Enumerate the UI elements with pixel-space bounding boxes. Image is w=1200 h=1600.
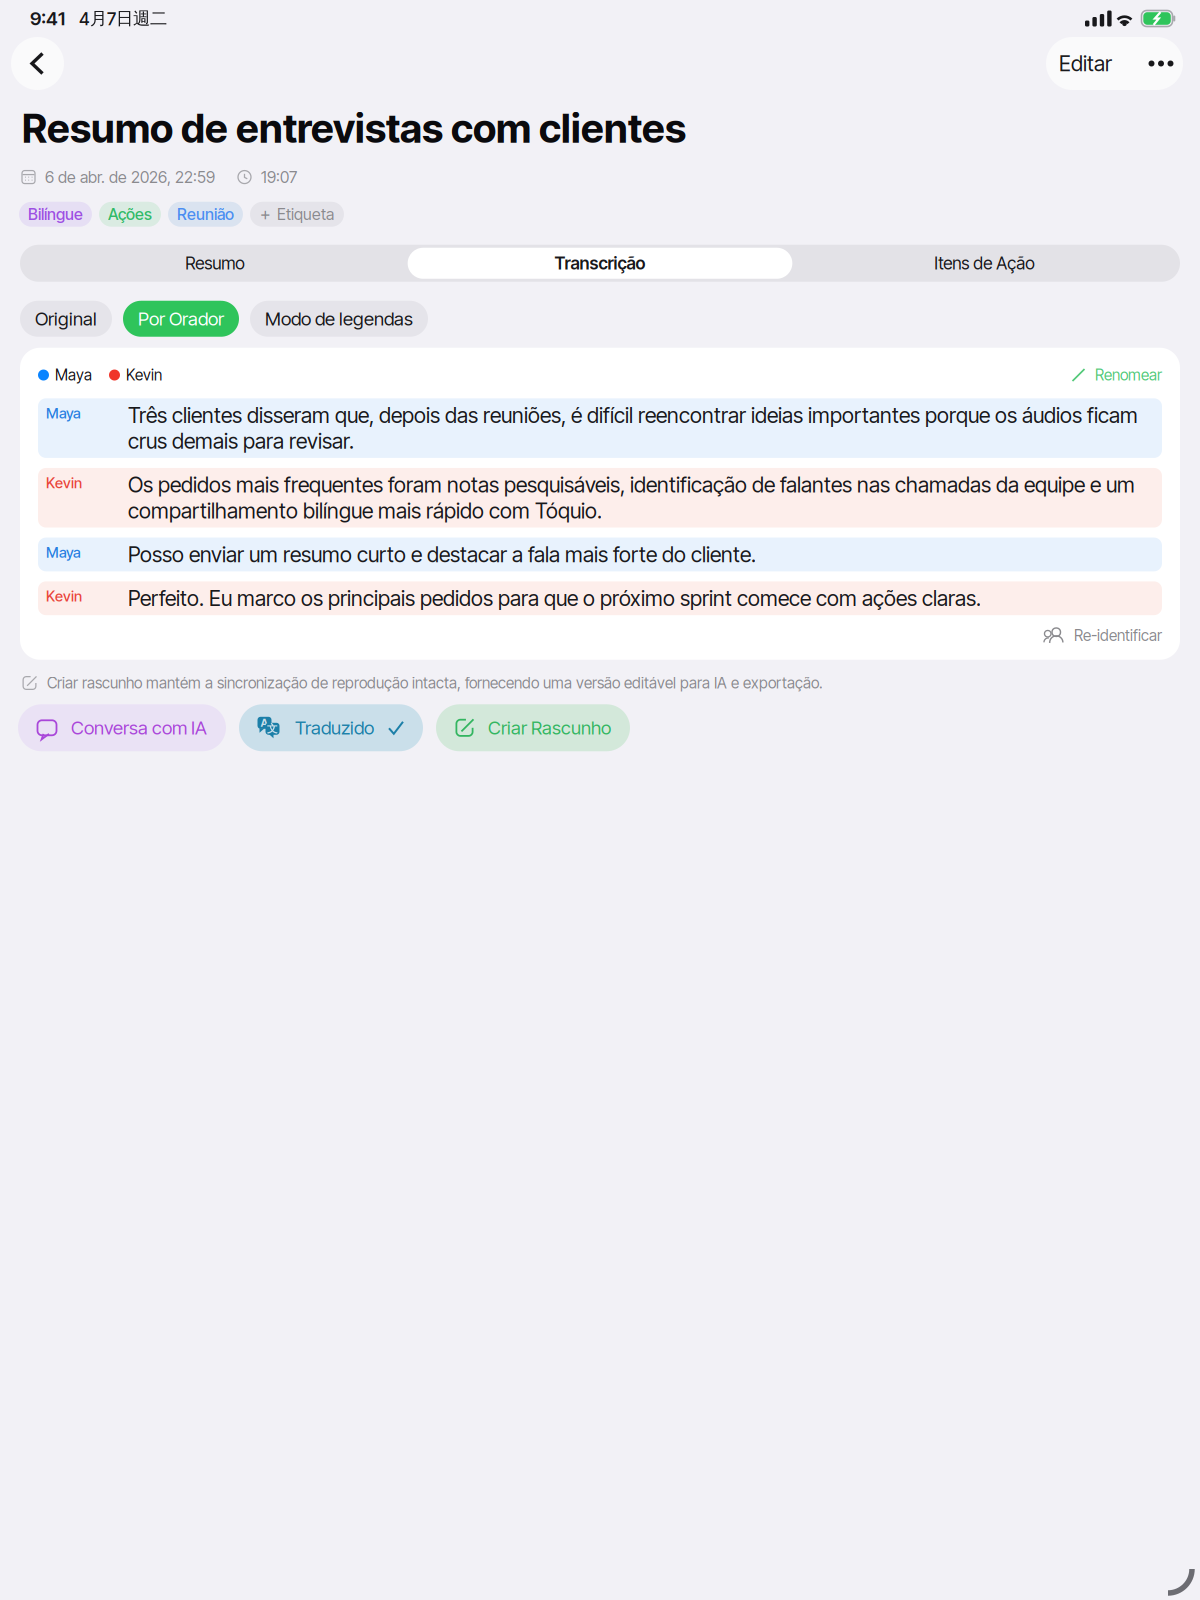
staticText: Por Orador xyxy=(138,307,224,330)
staticText: Traduzido xyxy=(295,716,374,739)
staticText: Criar Rascunho xyxy=(488,716,611,739)
staticText: Renomear xyxy=(1095,366,1162,384)
staticText: A xyxy=(260,716,268,729)
staticText: Três clientes disseram que, depois das r… xyxy=(128,402,1138,454)
staticText: + xyxy=(260,204,271,225)
staticText: Kevin xyxy=(126,366,162,384)
button[interactable]: Conversa com IA xyxy=(18,704,226,751)
button[interactable]: Criar Rascunho xyxy=(436,704,630,751)
button[interactable]: Original xyxy=(20,301,112,337)
button[interactable]: Editar xyxy=(1046,37,1130,90)
button[interactable]: Bilíngue xyxy=(19,202,92,227)
staticText: Ações xyxy=(108,205,152,224)
staticText: 6 de abr. de 2026, 22:59 xyxy=(45,167,215,187)
staticText: Maya xyxy=(46,544,81,561)
staticText: Perfeito. Eu marco os principais pedidos… xyxy=(128,585,981,611)
staticText: Bilíngue xyxy=(28,205,83,224)
staticText: 文 xyxy=(267,722,278,735)
button[interactable]: More options xyxy=(1130,37,1183,90)
staticText: Original xyxy=(35,307,97,330)
staticText: Posso enviar um resumo curto e destacar … xyxy=(128,542,756,567)
staticText: Editar xyxy=(1059,51,1112,76)
button[interactable]: + xyxy=(250,202,344,227)
staticText: Re-identificar xyxy=(1074,626,1162,645)
staticText: Resumo de entrevistas com clientes xyxy=(22,104,686,152)
staticText: Maya xyxy=(46,404,81,422)
staticText: Kevin xyxy=(46,474,82,492)
button[interactable]: Back xyxy=(11,37,64,90)
staticText: Kevin xyxy=(46,587,82,605)
staticText: Modo de legendas xyxy=(265,307,413,330)
button[interactable]: Re-identificar xyxy=(1044,626,1162,645)
staticText: 19:07 xyxy=(261,167,297,187)
button[interactable]: Itens de Ação xyxy=(792,248,1177,279)
button[interactable]: Reunião xyxy=(168,202,243,227)
button[interactable]: Modo de legendas xyxy=(250,301,428,337)
staticText: Conversa com IA xyxy=(71,716,207,739)
button[interactable]: Renomear xyxy=(1071,366,1162,384)
button[interactable]: Por Orador xyxy=(123,301,239,337)
staticText: Transcrição xyxy=(554,253,645,274)
staticText: 9:41 xyxy=(30,7,65,30)
button[interactable]: Transcrição xyxy=(408,248,792,279)
button[interactable]: A xyxy=(239,704,423,751)
button[interactable]: Resumo xyxy=(23,248,408,279)
staticText: Etiqueta xyxy=(277,205,334,224)
staticText: Reunião xyxy=(177,205,234,224)
button[interactable]: Ações xyxy=(99,202,161,227)
staticText: 4月7日週二 xyxy=(79,8,167,29)
staticText: Maya xyxy=(55,366,92,384)
staticText: Resumo xyxy=(185,253,245,274)
staticText: Criar rascunho mantém a sincronização de… xyxy=(47,674,823,692)
staticText: Itens de Ação xyxy=(934,253,1035,274)
staticText: Os pedidos mais frequentes foram notas p… xyxy=(128,472,1135,523)
